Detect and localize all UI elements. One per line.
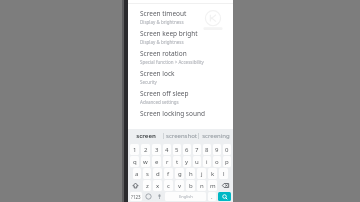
button[interactable]: m [208, 180, 217, 191]
staticText: y [185, 158, 189, 166]
button[interactable]: y [183, 156, 191, 167]
button[interactable]: a [133, 168, 141, 179]
staticText: Display & brightness [140, 39, 184, 45]
staticText: 5 [175, 146, 179, 154]
button[interactable]: t [173, 156, 181, 167]
button[interactable]: Search [218, 192, 231, 201]
button[interactable]: 9 [213, 144, 221, 155]
button[interactable]: Emoji [144, 192, 153, 201]
button[interactable]: Screen timeout [128, 9, 233, 29]
staticText: Advanced settings [140, 99, 179, 105]
button[interactable]: n [197, 180, 206, 191]
button[interactable]: j [197, 168, 206, 179]
staticText: Special function > Accessibility [140, 59, 204, 65]
staticText: z [146, 182, 149, 190]
staticText: screening [202, 132, 230, 140]
staticText: English [179, 194, 193, 199]
staticText: l [223, 170, 225, 178]
button[interactable]: q [130, 156, 139, 167]
button[interactable]: d [153, 168, 162, 179]
staticText: n [200, 182, 204, 190]
staticText: g [178, 170, 182, 178]
button[interactable]: 8 [203, 144, 211, 155]
staticText: 1 [133, 146, 137, 154]
button[interactable]: 4 [163, 144, 171, 155]
button[interactable]: 1 [130, 144, 139, 155]
staticText: Screen off sleep [140, 89, 189, 98]
button[interactable]: h [186, 168, 195, 179]
button[interactable]: g [175, 168, 184, 179]
staticText: b [189, 182, 193, 190]
button[interactable]: Screen locking sound [128, 109, 233, 129]
staticText: 4 [165, 146, 169, 154]
button[interactable]: screenshot [164, 129, 198, 143]
staticText: u [195, 158, 199, 166]
button[interactable]: ?123 [130, 192, 142, 201]
button[interactable]: 0 [223, 144, 231, 155]
staticText: j [201, 170, 203, 178]
button[interactable]: Voice input [155, 192, 163, 201]
staticText: 2 [144, 146, 148, 154]
staticText: Screen keep bright [140, 29, 198, 38]
staticText: 0 [225, 146, 229, 154]
staticText: o [215, 158, 219, 166]
staticText: a [135, 170, 139, 178]
staticText: f [167, 170, 170, 178]
button[interactable]: Backspace [219, 180, 231, 191]
staticText: v [178, 182, 182, 190]
button[interactable]: u [193, 156, 201, 167]
button[interactable]: screening [199, 129, 233, 143]
staticText: t [176, 158, 179, 166]
staticText: p [225, 158, 229, 166]
button[interactable]: i [203, 156, 211, 167]
button[interactable]: 5 [173, 144, 181, 155]
staticText: ?123 [131, 194, 141, 200]
staticText: Display & brightness [140, 19, 184, 25]
button[interactable]: 2 [141, 144, 150, 155]
staticText: 9 [215, 146, 219, 154]
button[interactable]: c [164, 180, 173, 191]
button[interactable]: o [213, 156, 221, 167]
button[interactable]: x [153, 180, 162, 191]
button[interactable]: 6 [183, 144, 191, 155]
button[interactable]: Screen rotation [128, 49, 233, 69]
button[interactable]: Screen keep bright [128, 29, 233, 49]
staticText: x [156, 182, 160, 190]
button[interactable]: e [152, 156, 161, 167]
staticText: r [166, 158, 169, 166]
staticText: Screen lock [140, 69, 175, 78]
staticText: h [189, 170, 193, 178]
button[interactable]: Screen off sleep [128, 89, 233, 109]
button[interactable]: w [141, 156, 150, 167]
button[interactable]: 3 [152, 144, 161, 155]
staticText: q [133, 158, 137, 166]
staticText: m [210, 182, 216, 190]
staticText: screenshot [166, 132, 197, 140]
button[interactable]: Shift [130, 180, 141, 191]
button[interactable]: l [219, 168, 228, 179]
staticText: Screen locking sound [140, 109, 205, 118]
button[interactable]: . [208, 192, 216, 201]
button[interactable]: p [223, 156, 231, 167]
staticText: . [211, 193, 213, 201]
button[interactable]: z [143, 180, 151, 191]
staticText: c [167, 182, 170, 190]
staticText: Screen rotation [140, 49, 187, 58]
button[interactable]: v [175, 180, 184, 191]
button[interactable]: screen [128, 129, 163, 143]
staticText: Security [140, 79, 157, 85]
button[interactable]: r [163, 156, 171, 167]
staticText: e [155, 158, 159, 166]
staticText: i [206, 158, 208, 166]
button[interactable]: k [208, 168, 217, 179]
staticText: k [211, 170, 215, 178]
button[interactable]: b [186, 180, 195, 191]
staticText: 6 [185, 146, 189, 154]
button[interactable]: s [143, 168, 151, 179]
button[interactable]: f [164, 168, 173, 179]
staticText: 8 [205, 146, 209, 154]
button[interactable]: Screen lock [128, 69, 233, 89]
button[interactable]: 7 [193, 144, 201, 155]
staticText: Screen timeout [140, 9, 187, 18]
button[interactable]: English [165, 192, 206, 201]
